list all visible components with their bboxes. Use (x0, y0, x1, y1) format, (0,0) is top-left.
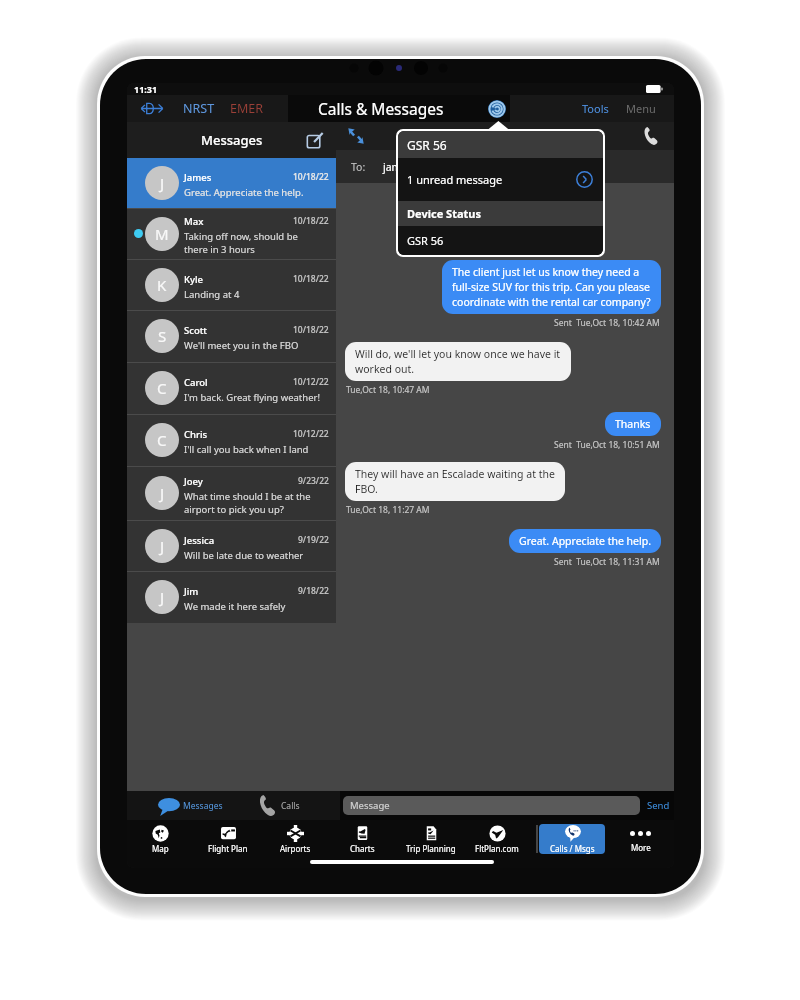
staticText: 9/19/22 (298, 534, 329, 546)
button[interactable]: Tools (575, 95, 615, 122)
staticText: Joey (184, 475, 203, 488)
button[interactable]: Calls / Msgs (539, 824, 605, 854)
button[interactable]: J (127, 158, 336, 208)
staticText: Jim (184, 585, 199, 598)
button[interactable]: Messages (158, 791, 228, 820)
button[interactable]: Airports (262, 824, 328, 854)
staticText: Messages (183, 800, 223, 812)
staticText: What time should I be at the airport to … (184, 490, 311, 516)
staticText: Map (152, 843, 169, 854)
staticText: Taking off now, should be there in 3 hou… (184, 230, 298, 256)
button[interactable]: J (127, 466, 336, 520)
staticText: Max (184, 215, 204, 228)
staticText: C (157, 378, 167, 398)
staticText: Scott (184, 324, 207, 337)
staticText: Carol (184, 376, 208, 389)
staticText: Landing at 4 (184, 288, 240, 301)
staticText: 10/18/22 (293, 171, 329, 183)
button[interactable]: Calls & Messages (288, 95, 510, 122)
button[interactable]: Trip Planning (398, 824, 464, 854)
button[interactable]: NRST (181, 95, 217, 122)
button[interactable]: M (127, 208, 336, 259)
staticText: Calls (281, 800, 300, 812)
button[interactable]: Calls (257, 791, 313, 820)
staticText: Menu (626, 101, 656, 116)
staticText: FltPlan.com (475, 843, 519, 854)
staticText: More (631, 842, 651, 853)
staticText: Tue,Oct 18, 10:47 AM (346, 384, 430, 396)
button[interactable]: K (127, 259, 336, 310)
staticText: Messages (201, 131, 263, 149)
staticText: We'll meet you in the FBO (184, 339, 299, 352)
staticText: 9/18/22 (298, 585, 329, 597)
staticText: J (160, 173, 165, 193)
staticText: Sent Tue,Oct 18, 11:31 AM (554, 556, 660, 568)
staticText: Message (350, 799, 390, 812)
staticText: J (160, 536, 165, 556)
staticText: J (160, 587, 165, 607)
button[interactable]: More (607, 824, 673, 854)
button[interactable]: C (127, 362, 336, 414)
staticText: 10/18/22 (293, 324, 329, 336)
staticText: 1 unread message (407, 172, 503, 187)
staticText: Charts (350, 843, 375, 854)
button[interactable]: Message (343, 796, 640, 815)
staticText: Trip Planning (406, 843, 456, 854)
button[interactable]: EMER (229, 95, 265, 122)
staticText: Device Status (407, 206, 481, 221)
staticText: Sent Tue,Oct 18, 10:51 AM (554, 439, 660, 451)
staticText: Great. Appreciate the help. (519, 534, 651, 548)
staticText: 10/18/22 (293, 273, 329, 285)
staticText: Thanks (615, 417, 651, 431)
staticText: Calls / Msgs (550, 843, 595, 854)
staticText: NRST (183, 100, 215, 117)
button[interactable]: Charts (329, 824, 395, 854)
staticText: Airports (280, 843, 311, 854)
staticText: Jessica (184, 534, 215, 547)
staticText: J (160, 483, 165, 503)
staticText: S (158, 326, 167, 346)
button[interactable]: 1 unread message (398, 158, 603, 201)
staticText: Tools (582, 101, 609, 116)
button[interactable]: Direct to (135, 95, 169, 122)
staticText: 10/12/22 (293, 376, 329, 388)
staticText: Will do, we'll let you know once we have… (355, 347, 561, 376)
staticText: Flight Plan (208, 843, 248, 854)
staticText: EMER (230, 100, 264, 117)
button[interactable]: J (127, 571, 336, 623)
staticText: 10/18/22 (293, 215, 329, 227)
staticText: The client just let us know they need a … (452, 265, 651, 309)
button[interactable]: Flight Plan (195, 824, 261, 854)
button[interactable]: Map (127, 824, 193, 854)
staticText: GSR 56 (407, 137, 447, 153)
staticText: Sent Tue,Oct 18, 10:42 AM (554, 317, 660, 329)
staticText: I'll call you back when I land (184, 443, 309, 456)
staticText: They will have an Escalade waiting at th… (355, 467, 555, 496)
staticText: james (383, 160, 413, 174)
button[interactable]: C (127, 414, 336, 466)
button[interactable]: S (127, 310, 336, 362)
staticText: I'm back. Great flying weather! (184, 391, 320, 404)
button[interactable]: Compose message (304, 129, 326, 151)
staticText: Send (647, 799, 670, 812)
staticText: James (184, 171, 212, 184)
button[interactable]: FltPlan.com (464, 824, 530, 854)
button[interactable]: Menu (620, 95, 662, 122)
staticText: Kyle (184, 273, 204, 286)
staticText: GSR 56 (407, 233, 444, 248)
staticText: C (157, 430, 167, 450)
staticText: Calls & Messages (318, 98, 444, 119)
staticText: 9/23/22 (298, 475, 329, 487)
button[interactable]: J (127, 520, 336, 571)
staticText: We made it here safely (184, 600, 286, 613)
staticText: M (155, 224, 169, 244)
staticText: 10/12/22 (293, 428, 329, 440)
button[interactable]: Expand (345, 125, 367, 147)
staticText: Chris (184, 428, 208, 441)
button[interactable]: Call (640, 125, 662, 147)
staticText: To: (351, 160, 366, 174)
staticText: K (157, 275, 167, 295)
staticText: Will be late due to weather (184, 549, 304, 562)
button[interactable]: Send (643, 791, 673, 820)
staticText: Tue,Oct 18, 11:27 AM (346, 504, 430, 516)
